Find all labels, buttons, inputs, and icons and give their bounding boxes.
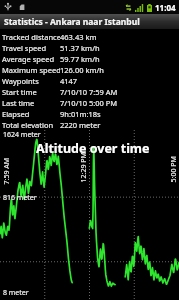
- staticText: Travel speed: [2, 43, 60, 53]
- button[interactable]: Statistics - Ankara naar Istanbul: [0, 14, 179, 29]
- staticText: Tracked distance: [2, 32, 60, 42]
- staticText: 12:29 PM: [78, 151, 88, 182]
- other: Signal strength: [135, 4, 144, 12]
- staticText: Statistics - Ankara naar Istanbul: [4, 16, 140, 28]
- staticText: 11:04: [155, 2, 176, 13]
- staticText: 8 meter: [3, 288, 29, 298]
- button[interactable]: Elapsed: [0, 108, 179, 119]
- other: Battery: [147, 4, 152, 12]
- staticText: 1624 meter: [3, 130, 41, 140]
- other: USB connected: [4, 3, 12, 11]
- staticText: Start time: [2, 87, 60, 97]
- staticText: 7/10/10 5:00 PM: [60, 98, 118, 108]
- staticText: 7/10/10 7:59 AM: [60, 87, 118, 97]
- staticText: 7:59 AM: [1, 157, 11, 184]
- other: SD card: [18, 3, 26, 11]
- staticText: 463.43 km: [60, 32, 97, 42]
- staticText: 816 meter: [3, 193, 37, 203]
- button[interactable]: Maximum speed: [0, 64, 179, 75]
- staticText: Average speed: [2, 54, 60, 64]
- staticText: Altitude over time: [36, 140, 150, 157]
- other: Sync: [125, 4, 132, 11]
- button[interactable]: Start time: [0, 86, 179, 97]
- staticText: 126.00 km/h: [60, 65, 104, 75]
- staticText: Maximum speed: [2, 65, 60, 75]
- staticText: 51.37 km/h: [60, 43, 100, 53]
- button[interactable]: Tracked distance: [0, 31, 179, 42]
- staticText: 4147: [60, 76, 78, 86]
- staticText: Total elevation: [2, 120, 60, 130]
- staticText: Last time: [2, 98, 60, 108]
- staticText: Waypoints: [2, 76, 60, 86]
- button[interactable]: Average speed: [0, 53, 179, 64]
- button[interactable]: Altitude over time chart: [0, 130, 179, 300]
- button[interactable]: Total elevation: [0, 119, 179, 130]
- button[interactable]: Waypoints: [0, 75, 179, 86]
- button[interactable]: Last time: [0, 97, 179, 108]
- staticText: 59.77 km/h: [60, 54, 100, 64]
- staticText: 2220 meter: [60, 120, 101, 130]
- staticText: 9h:01m:18s: [60, 109, 101, 119]
- staticText: 5:00 PM: [168, 155, 178, 182]
- staticText: Elapsed: [2, 109, 60, 119]
- button[interactable]: Travel speed: [0, 42, 179, 53]
